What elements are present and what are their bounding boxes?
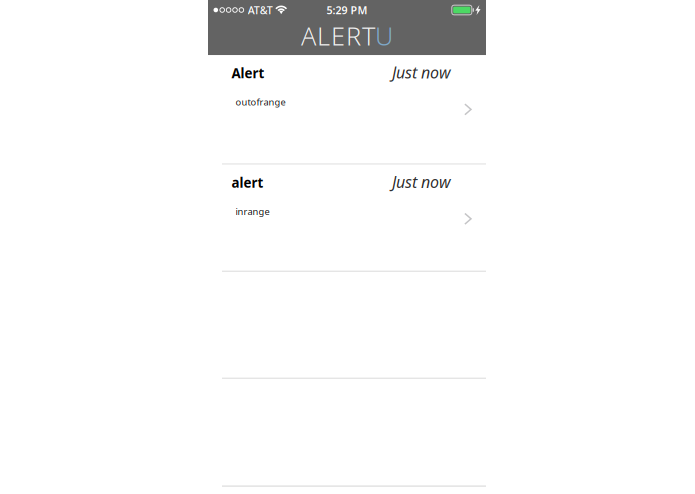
staticText: 5:29 PM (326, 3, 367, 17)
staticText: inrange (235, 205, 269, 217)
button[interactable]: Alert (208, 55, 486, 165)
staticText: Alert (231, 64, 264, 82)
button[interactable]: alert (208, 165, 486, 272)
staticText: AT&T (248, 3, 273, 17)
staticText: outofrange (235, 96, 285, 108)
staticText: Just now (392, 62, 451, 83)
staticText: U (375, 19, 393, 52)
staticText: ALERT (301, 19, 375, 52)
staticText: Just now (392, 171, 451, 192)
staticText: alert (231, 174, 263, 191)
